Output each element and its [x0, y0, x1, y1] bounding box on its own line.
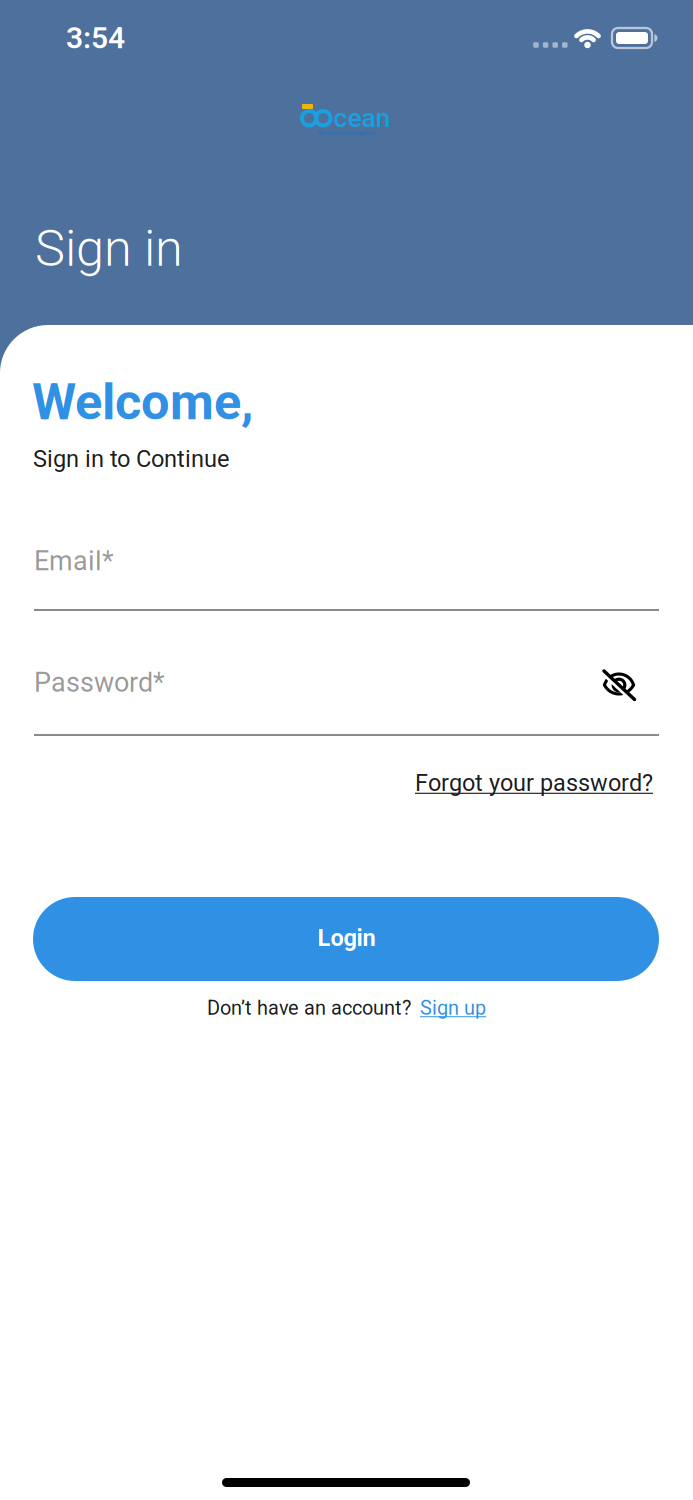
staticText: Don’t have an account? — [207, 996, 411, 1020]
staticText: cean — [333, 102, 390, 134]
staticText: Password* — [34, 667, 165, 698]
staticText: Sign up — [420, 996, 486, 1020]
staticText: Welcome, — [32, 372, 253, 432]
staticText: Email* — [34, 545, 114, 577]
staticText: Login — [317, 924, 375, 952]
staticText: Sign in — [35, 219, 183, 278]
staticText: AOcean Global Logistics — [317, 130, 375, 136]
staticText: 3:54 — [66, 20, 125, 56]
staticText: Sign in to Continue — [33, 445, 230, 473]
staticText: Forgot your password? — [415, 769, 653, 797]
